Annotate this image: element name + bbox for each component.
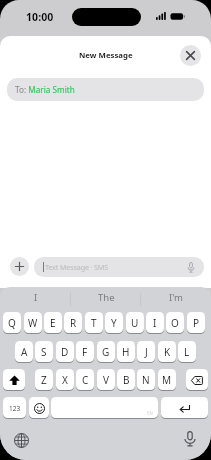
- staticText: EN: [147, 410, 153, 416]
- staticText: W: [28, 316, 38, 330]
- staticText: 123: [9, 404, 21, 413]
- button[interactable]: E: [44, 312, 62, 334]
- staticText: New Message: [79, 50, 133, 61]
- staticText: L: [184, 345, 190, 359]
- button[interactable]: V: [97, 369, 115, 391]
- button[interactable]: L: [178, 341, 196, 363]
- staticText: 10:00: [26, 10, 54, 24]
- button[interactable]: [51, 397, 158, 419]
- button[interactable]: H: [117, 341, 135, 363]
- staticText: V: [103, 373, 109, 387]
- staticText: M: [162, 373, 172, 387]
- staticText: T: [91, 316, 97, 330]
- button[interactable]: C: [76, 369, 94, 391]
- staticText: P: [193, 316, 200, 330]
- staticText: I: [34, 291, 38, 304]
- staticText: X: [62, 373, 68, 387]
- staticText: I'm: [169, 291, 183, 304]
- button[interactable]: [7, 426, 35, 454]
- button[interactable]: [180, 45, 201, 66]
- staticText: E: [50, 316, 56, 330]
- button[interactable]: [3, 369, 25, 391]
- button[interactable]: [186, 369, 208, 391]
- staticText: C: [82, 373, 89, 387]
- staticText: K: [164, 345, 171, 359]
- staticText: B: [123, 373, 130, 387]
- button[interactable]: N: [137, 369, 155, 391]
- staticText: To: Maria Smith: [15, 84, 75, 95]
- staticText: O: [171, 316, 179, 330]
- staticText: U: [131, 316, 139, 330]
- staticText: S: [41, 345, 47, 359]
- button[interactable]: S: [35, 341, 53, 363]
- button[interactable]: To: Maria Smith: [7, 78, 204, 101]
- staticText: A: [21, 345, 28, 359]
- button[interactable]: Text Message · SMS: [34, 257, 204, 277]
- button[interactable]: G: [97, 341, 115, 363]
- staticText: Q: [8, 316, 16, 330]
- button[interactable]: [176, 425, 204, 453]
- button[interactable]: M: [158, 369, 176, 391]
- staticText: Y: [111, 316, 117, 330]
- staticText: J: [145, 345, 148, 359]
- staticText: R: [70, 316, 77, 330]
- button[interactable]: I'm: [146, 290, 206, 305]
- staticText: N: [142, 373, 150, 387]
- button[interactable]: I: [6, 290, 66, 305]
- button[interactable]: K: [158, 341, 176, 363]
- button[interactable]: [10, 257, 29, 276]
- button[interactable]: F: [76, 341, 94, 363]
- staticText: G: [102, 345, 110, 359]
- staticText: F: [82, 345, 88, 359]
- button[interactable]: Z: [35, 369, 53, 391]
- button[interactable]: I: [146, 312, 164, 334]
- staticText: D: [61, 345, 69, 359]
- staticText: H: [122, 345, 130, 359]
- button[interactable]: B: [117, 369, 135, 391]
- button[interactable]: P: [187, 312, 205, 334]
- staticText: I: [153, 316, 157, 330]
- staticText: Text Message · SMS: [45, 262, 109, 272]
- button[interactable]: Y: [105, 312, 123, 334]
- button[interactable]: 123: [3, 397, 26, 419]
- button[interactable]: W: [24, 312, 42, 334]
- staticText: The: [98, 291, 115, 304]
- button[interactable]: U: [126, 312, 144, 334]
- button[interactable]: J: [137, 341, 155, 363]
- button[interactable]: [29, 397, 49, 419]
- button[interactable]: The: [76, 290, 136, 305]
- button[interactable]: X: [56, 369, 74, 391]
- button[interactable]: T: [85, 312, 103, 334]
- button[interactable]: O: [166, 312, 184, 334]
- button[interactable]: D: [56, 341, 74, 363]
- button[interactable]: [161, 397, 208, 419]
- staticText: Z: [41, 373, 47, 387]
- button[interactable]: Q: [3, 312, 21, 334]
- button[interactable]: R: [64, 312, 82, 334]
- button[interactable]: A: [15, 341, 33, 363]
